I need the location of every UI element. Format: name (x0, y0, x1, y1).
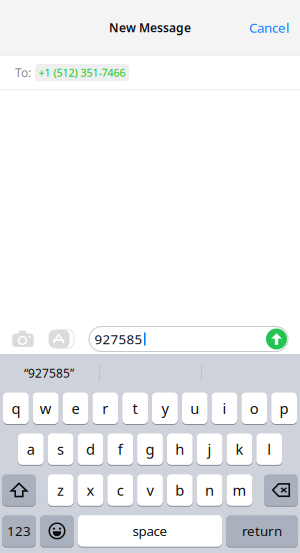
button[interactable]: f (107, 433, 133, 465)
staticText: “927585” (24, 365, 74, 381)
staticText: o (250, 398, 259, 418)
staticText: 123 (7, 522, 31, 540)
button[interactable]: s (48, 433, 73, 465)
button[interactable]: +1 (512) 351-7466 (35, 64, 129, 81)
button[interactable]: space (78, 515, 222, 547)
staticText: g (145, 439, 154, 459)
button[interactable]: i (212, 392, 237, 424)
button[interactable]: w (33, 392, 59, 424)
button[interactable]: e (63, 392, 88, 424)
button[interactable]: d (77, 433, 103, 465)
button[interactable]: z (48, 474, 73, 506)
staticText: To: (15, 65, 31, 80)
button[interactable]: Shift (2, 474, 36, 506)
button[interactable]: Send (266, 328, 287, 349)
staticText: c (117, 480, 124, 500)
staticText: s (57, 439, 64, 459)
staticText: y (161, 398, 168, 418)
button[interactable]: y (152, 392, 178, 424)
button[interactable]: h (167, 433, 193, 465)
staticText: q (11, 398, 20, 418)
button[interactable]: Emoji (40, 515, 74, 547)
button[interactable]: App Store (41, 324, 77, 354)
staticText: d (86, 439, 95, 459)
staticText: Cancel (249, 19, 289, 36)
staticText: a (27, 439, 35, 459)
button[interactable]: Cancel (238, 10, 300, 45)
button[interactable]: r (92, 392, 118, 424)
button[interactable]: “927585” (0, 354, 99, 392)
button[interactable]: return (226, 515, 298, 547)
staticText: e (71, 398, 79, 418)
staticText: New Message (109, 19, 191, 35)
button[interactable]: c (107, 474, 133, 506)
staticText: b (175, 480, 184, 500)
staticText: return (242, 522, 282, 540)
staticText: i (222, 398, 226, 418)
button[interactable]: Camera (5, 324, 41, 354)
button[interactable]: o (241, 392, 267, 424)
staticText: 927585 (94, 330, 142, 348)
button[interactable]: j (197, 433, 222, 465)
staticText: r (102, 398, 108, 418)
staticText: x (86, 480, 94, 500)
staticText: space (132, 522, 167, 540)
staticText: j (208, 439, 212, 459)
staticText: h (175, 439, 184, 459)
staticText: p (280, 398, 289, 418)
staticText: m (232, 480, 246, 500)
staticText: k (235, 439, 243, 459)
button[interactable]: t (122, 392, 148, 424)
button[interactable]: l (256, 433, 282, 465)
staticText: w (40, 398, 52, 418)
staticText: t (133, 398, 138, 418)
staticText: +1 (512) 351-7466 (38, 65, 125, 80)
button[interactable]: p (271, 392, 297, 424)
button[interactable]: v (137, 474, 163, 506)
button[interactable]: g (137, 433, 163, 465)
button[interactable]: m (226, 474, 252, 506)
button[interactable]: a (18, 433, 44, 465)
button[interactable]: k (226, 433, 252, 465)
staticText: z (57, 480, 64, 500)
staticText: v (146, 480, 153, 500)
staticText: f (118, 439, 123, 459)
staticText: n (205, 480, 214, 500)
button[interactable]: q (3, 392, 29, 424)
staticText: u (190, 398, 199, 418)
button[interactable]: n (197, 474, 222, 506)
button[interactable]: 123 (2, 515, 36, 547)
button[interactable]: u (182, 392, 208, 424)
staticText: l (267, 439, 271, 459)
button[interactable]: Delete (264, 474, 298, 506)
button[interactable]: x (77, 474, 103, 506)
button[interactable]: b (167, 474, 193, 506)
